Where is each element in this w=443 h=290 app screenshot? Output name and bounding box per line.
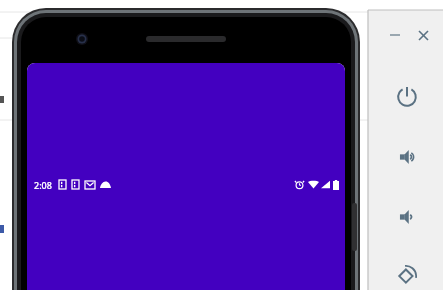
button[interactable]: Rotate (392, 260, 422, 290)
staticText: 2:08 (34, 179, 52, 191)
button[interactable]: Power (392, 82, 422, 112)
button[interactable]: Close (414, 26, 432, 44)
button[interactable]: Volume up (392, 142, 422, 172)
button[interactable]: Volume down (392, 202, 422, 232)
button[interactable]: Minimize (386, 26, 404, 44)
